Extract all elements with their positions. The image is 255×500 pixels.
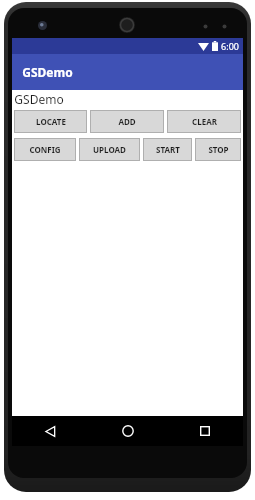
- button[interactable]: Home: [89, 416, 166, 446]
- staticText: GSDemo: [14, 91, 64, 107]
- staticText: CLEAR: [192, 116, 217, 127]
- button[interactable]: ADD: [90, 110, 164, 133]
- button[interactable]: START: [143, 138, 192, 161]
- staticText: UPLOAD: [93, 144, 126, 155]
- button[interactable]: Recent apps: [166, 416, 243, 446]
- staticText: GSDemo: [22, 64, 73, 80]
- staticText: LOCATE: [36, 116, 66, 127]
- staticText: CONFIG: [29, 144, 61, 155]
- button[interactable]: CONFIG: [14, 138, 76, 161]
- staticText: 6:00: [221, 40, 239, 52]
- button[interactable]: Back: [12, 416, 89, 446]
- staticText: ADD: [118, 116, 136, 127]
- button[interactable]: UPLOAD: [79, 138, 140, 161]
- button[interactable]: LOCATE: [14, 110, 87, 133]
- staticText: START: [156, 144, 180, 155]
- staticText: STOP: [208, 144, 229, 155]
- button[interactable]: CLEAR: [167, 110, 241, 133]
- button[interactable]: STOP: [195, 138, 241, 161]
